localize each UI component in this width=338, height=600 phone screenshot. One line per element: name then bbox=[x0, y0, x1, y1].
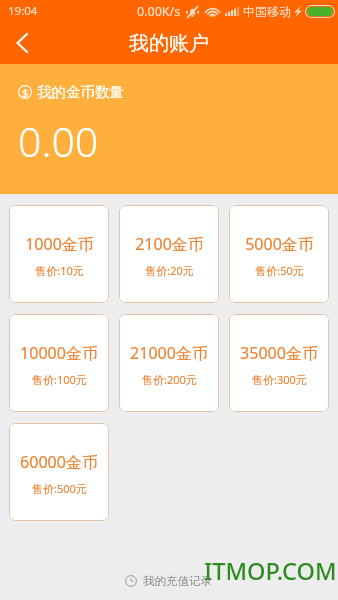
staticText: 售价:10元 bbox=[35, 263, 84, 278]
staticText: 售价:20元 bbox=[145, 263, 194, 278]
staticText: 售价:100元 bbox=[32, 372, 87, 387]
staticText: 35000金币 bbox=[240, 342, 318, 364]
button[interactable]: 我的充值记录 bbox=[115, 566, 222, 596]
button[interactable]: 10000金币 bbox=[9, 314, 109, 412]
staticText: 19:04 bbox=[8, 3, 38, 19]
button[interactable]: 60000金币 bbox=[9, 423, 109, 521]
staticText: 售价:50元 bbox=[255, 263, 304, 278]
staticText: 0.00K/s bbox=[137, 3, 181, 20]
staticText: 我的账户 bbox=[129, 31, 209, 56]
staticText: 中国移动 bbox=[243, 4, 291, 19]
staticText: 21000金币 bbox=[130, 342, 208, 364]
staticText: 1000金币 bbox=[25, 233, 94, 255]
staticText: $ bbox=[22, 85, 29, 99]
staticText: 10000金币 bbox=[20, 342, 98, 364]
staticText: 5000金币 bbox=[245, 233, 314, 255]
button[interactable]: 21000金币 bbox=[119, 314, 219, 412]
staticText: 售价:200元 bbox=[142, 372, 197, 387]
staticText: 0.00 bbox=[18, 113, 99, 169]
staticText: ITMOP.COM bbox=[204, 555, 337, 587]
staticText: 我的金币数量 bbox=[37, 83, 124, 101]
button[interactable]: 1000金币 bbox=[9, 205, 109, 303]
staticText: 我的充值记录 bbox=[143, 574, 212, 588]
button[interactable]: Back bbox=[0, 21, 44, 65]
button[interactable]: 2100金币 bbox=[119, 205, 219, 303]
staticText: 60000金币 bbox=[20, 451, 98, 473]
staticText: 售价:300元 bbox=[252, 372, 307, 387]
button[interactable]: 35000金币 bbox=[229, 314, 329, 412]
button[interactable]: 5000金币 bbox=[229, 205, 329, 303]
staticText: 售价:500元 bbox=[32, 481, 87, 496]
staticText: 2100金币 bbox=[135, 233, 204, 255]
